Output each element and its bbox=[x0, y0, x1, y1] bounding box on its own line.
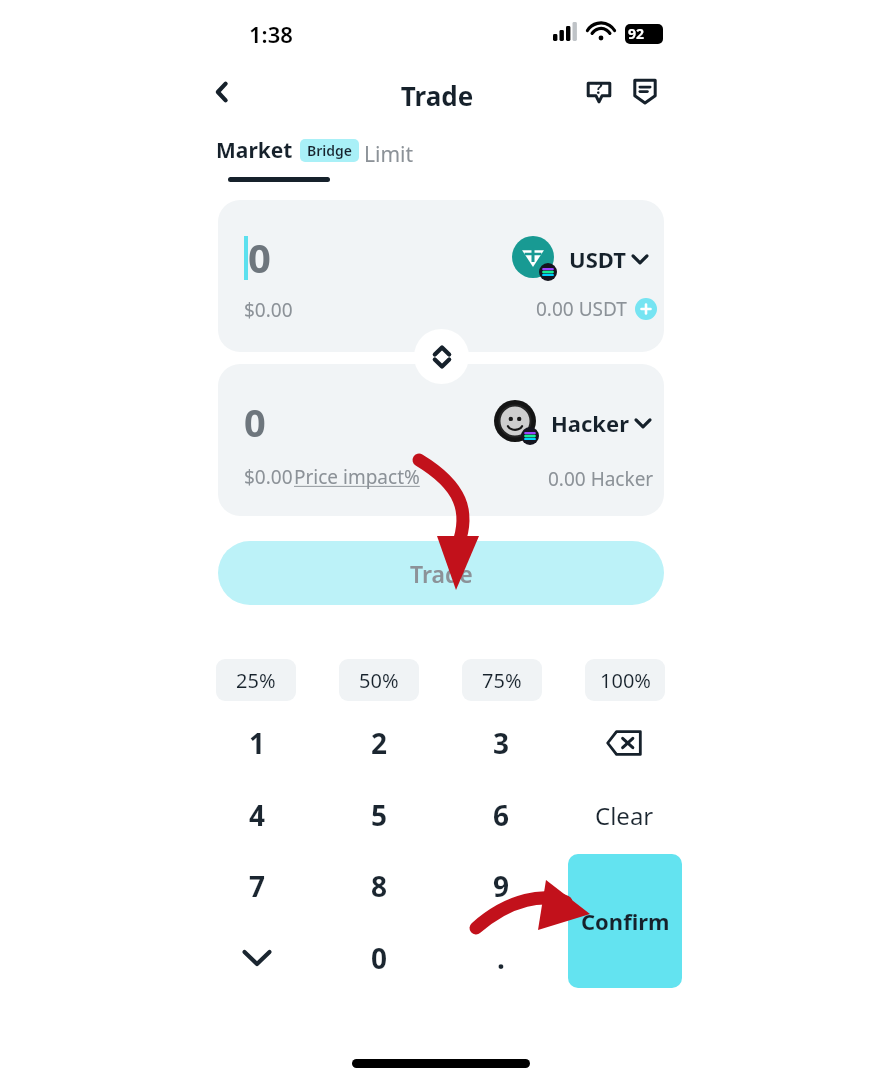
staticText: 6 bbox=[493, 796, 510, 834]
staticText: 1 bbox=[249, 724, 266, 762]
button[interactable]: 8 bbox=[319, 856, 439, 916]
button[interactable]: USDT bbox=[512, 236, 647, 282]
button[interactable]: 6 bbox=[441, 785, 561, 845]
staticText: 75% bbox=[482, 667, 522, 694]
button[interactable]: 5 bbox=[319, 785, 439, 845]
staticText: 0.00 USDT bbox=[536, 296, 627, 322]
staticText: Confirm bbox=[581, 906, 670, 936]
staticText: 25% bbox=[236, 667, 276, 694]
button[interactable]: 50% bbox=[339, 659, 419, 701]
button[interactable]: Market bbox=[216, 136, 359, 165]
button[interactable]: Price impact% bbox=[294, 464, 420, 490]
button[interactable]: Hacker bbox=[494, 400, 650, 446]
button[interactable]: 3 bbox=[441, 713, 561, 773]
staticText: Clear bbox=[595, 799, 654, 832]
button[interactable]: Back bbox=[198, 68, 246, 116]
staticText: $0.00 bbox=[244, 464, 293, 490]
staticText: Bridge bbox=[307, 141, 352, 160]
button[interactable]: 0 bbox=[218, 364, 664, 516]
button[interactable]: 1 bbox=[197, 713, 317, 773]
staticText: 2 bbox=[371, 724, 388, 762]
button[interactable]: Swap tokens bbox=[414, 329, 469, 384]
button[interactable]: Hide keypad bbox=[197, 928, 317, 988]
button[interactable]: 9 bbox=[441, 856, 561, 916]
button[interactable]: Trade bbox=[218, 541, 664, 605]
staticText: Market bbox=[216, 136, 293, 165]
button[interactable]: . bbox=[441, 928, 561, 988]
button[interactable]: Add funds bbox=[635, 298, 657, 320]
staticText: Trade bbox=[0, 78, 874, 113]
staticText: 7 bbox=[249, 867, 266, 905]
button[interactable]: Confirm bbox=[568, 854, 682, 988]
button[interactable]: Clear bbox=[564, 785, 684, 845]
staticText: 9 bbox=[493, 867, 510, 905]
staticText: 92 bbox=[628, 24, 645, 43]
button[interactable]: Limit bbox=[360, 136, 418, 173]
button[interactable]: 25% bbox=[216, 659, 296, 701]
staticText: 8 bbox=[371, 867, 388, 905]
staticText: 3 bbox=[493, 724, 510, 762]
staticText: Trade bbox=[410, 558, 473, 589]
button[interactable]: Order history bbox=[624, 70, 666, 112]
staticText: $0.00 bbox=[244, 297, 293, 323]
staticText: 0.00 Hacker bbox=[548, 466, 654, 492]
staticText: 50% bbox=[359, 667, 399, 694]
staticText: ? bbox=[595, 77, 603, 99]
button[interactable]: Backspace bbox=[564, 713, 684, 773]
button[interactable]: Help bbox=[578, 70, 620, 112]
staticText: 5 bbox=[371, 796, 388, 834]
button[interactable]: 4 bbox=[197, 785, 317, 845]
staticText: 100% bbox=[600, 667, 651, 694]
staticText: Price impact% bbox=[294, 464, 420, 490]
staticText: 1:38 bbox=[249, 19, 293, 49]
staticText: Limit bbox=[364, 140, 414, 169]
staticText: Hacker bbox=[551, 408, 629, 438]
staticText: USDT bbox=[569, 244, 626, 274]
button[interactable]: 2 bbox=[319, 713, 439, 773]
button[interactable]: 7 bbox=[197, 856, 317, 916]
button[interactable]: 100% bbox=[585, 659, 665, 701]
staticText: 0 bbox=[244, 396, 266, 448]
staticText: . bbox=[497, 939, 505, 977]
button[interactable]: 75% bbox=[462, 659, 542, 701]
button[interactable]: 0 bbox=[319, 928, 439, 988]
button[interactable]: 0 bbox=[218, 200, 664, 352]
staticText: 0 bbox=[371, 939, 388, 977]
staticText: 0 bbox=[248, 230, 271, 284]
staticText: 4 bbox=[249, 796, 266, 834]
